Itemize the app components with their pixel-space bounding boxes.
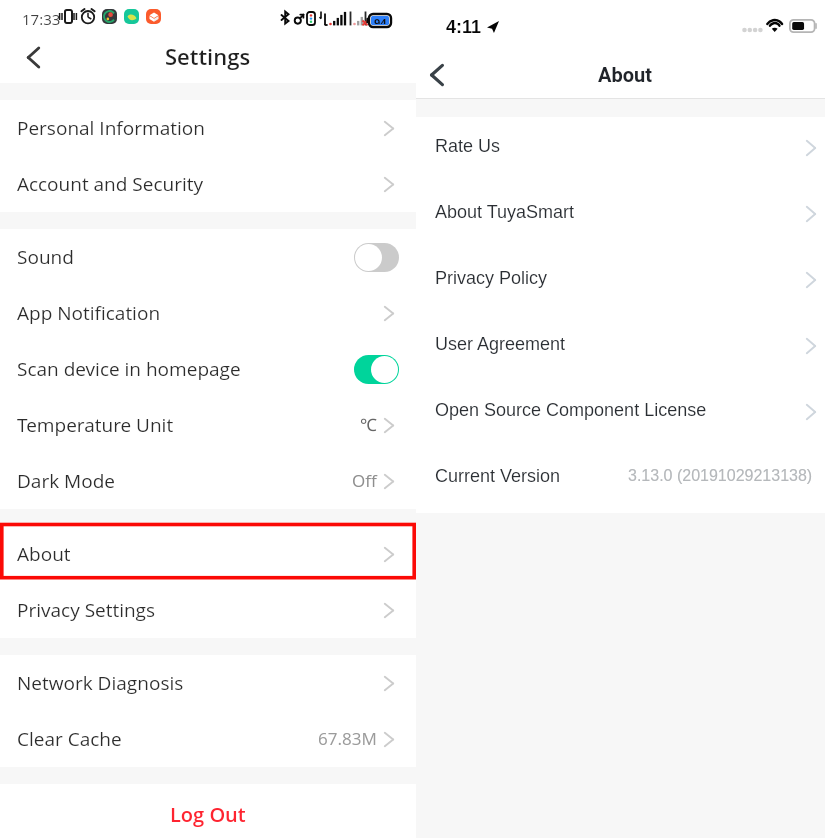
- staticText: Sound: [17, 244, 74, 270]
- staticText: Privacy Policy: [435, 268, 548, 288]
- button[interactable]: Back: [15, 39, 52, 76]
- staticText: Clear Cache: [17, 726, 122, 752]
- button[interactable]: Temperature Unit: [0, 397, 416, 453]
- staticText: App Notification: [17, 300, 161, 326]
- staticText: Off: [352, 469, 377, 492]
- staticText: Rate Us: [435, 136, 501, 156]
- button[interactable]: User Agreement: [416, 315, 825, 381]
- button[interactable]: Rate Us: [416, 117, 825, 183]
- staticText: Network Diagnosis: [17, 670, 184, 696]
- button[interactable]: Sound: [0, 229, 416, 285]
- button[interactable]: Clear Cache: [0, 711, 416, 767]
- staticText: 4:11: [446, 17, 482, 37]
- staticText: User Agreement: [435, 334, 566, 354]
- staticText: 94: [374, 16, 387, 24]
- button[interactable]: Privacy Settings: [0, 582, 416, 638]
- button[interactable]: App Notification: [0, 285, 416, 341]
- button[interactable]: Open Source Component License: [416, 381, 825, 447]
- staticText: Privacy Settings: [17, 597, 156, 623]
- staticText: 3.13.0 (20191029213138): [628, 467, 813, 485]
- staticText: 67.83M: [318, 727, 377, 750]
- staticText: Log Out: [170, 801, 246, 828]
- staticText: Personal Information: [17, 115, 205, 141]
- staticText: Temperature Unit: [17, 412, 174, 438]
- button[interactable]: Back: [418, 56, 456, 94]
- button[interactable]: Personal Information: [0, 100, 416, 156]
- button[interactable]: Current Version: [416, 447, 825, 513]
- staticText: Open Source Component License: [435, 400, 707, 420]
- staticText: Dark Mode: [17, 468, 116, 494]
- button[interactable]: Privacy Policy: [416, 249, 825, 315]
- button[interactable]: Log Out: [0, 784, 416, 838]
- staticText: About: [598, 63, 652, 86]
- staticText: Account and Security: [17, 171, 204, 197]
- button[interactable]: Account and Security: [0, 156, 416, 212]
- staticText: Settings: [165, 41, 251, 71]
- button[interactable]: About TuyaSmart: [416, 183, 825, 249]
- staticText: About: [17, 541, 71, 567]
- staticText: 17:33: [22, 9, 61, 29]
- button[interactable]: About: [0, 526, 416, 582]
- button[interactable]: Dark Mode: [0, 453, 416, 509]
- button[interactable]: Network Diagnosis: [0, 655, 416, 711]
- button[interactable]: Scan device in homepage: [0, 341, 416, 397]
- staticText: Scan device in homepage: [17, 356, 241, 382]
- staticText: ℃: [360, 413, 377, 436]
- staticText: Current Version: [435, 466, 561, 486]
- staticText: About TuyaSmart: [435, 202, 575, 222]
